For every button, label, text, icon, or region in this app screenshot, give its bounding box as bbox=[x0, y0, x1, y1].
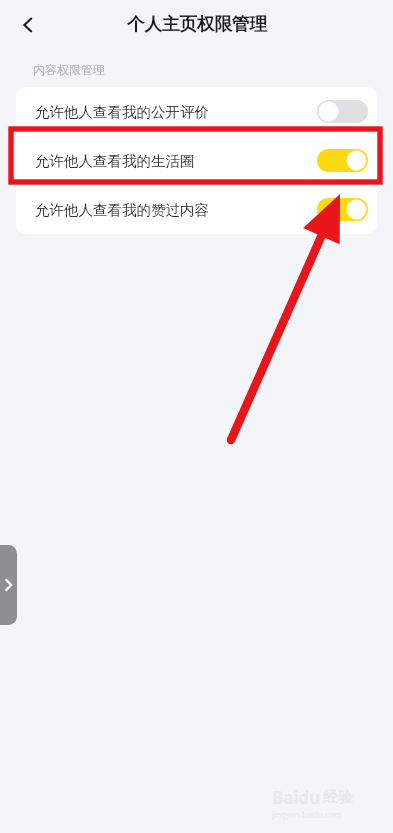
button[interactable]: Expand side panel bbox=[0, 545, 17, 625]
button[interactable]: Back bbox=[8, 5, 48, 45]
staticText: jingyan.baidu.com bbox=[272, 809, 342, 820]
staticText: 允许他人查看我的生活圈 bbox=[35, 152, 195, 170]
staticText: 经验 bbox=[323, 788, 353, 807]
staticText: 内容权限管理 bbox=[33, 62, 105, 77]
staticText: 个人主页权限管理 bbox=[127, 13, 267, 35]
button[interactable]: On bbox=[317, 149, 368, 172]
button[interactable]: 允许他人查看我的公开评价 bbox=[16, 87, 377, 136]
staticText: Baidu bbox=[272, 786, 321, 809]
button[interactable]: 允许他人查看我的生活圈 bbox=[16, 136, 377, 185]
staticText: 允许他人查看我的赞过内容 bbox=[35, 201, 209, 219]
button[interactable]: Off bbox=[317, 100, 368, 123]
button[interactable]: On bbox=[317, 198, 368, 221]
staticText: 允许他人查看我的公开评价 bbox=[35, 103, 209, 121]
button[interactable]: 允许他人查看我的赞过内容 bbox=[16, 185, 377, 234]
